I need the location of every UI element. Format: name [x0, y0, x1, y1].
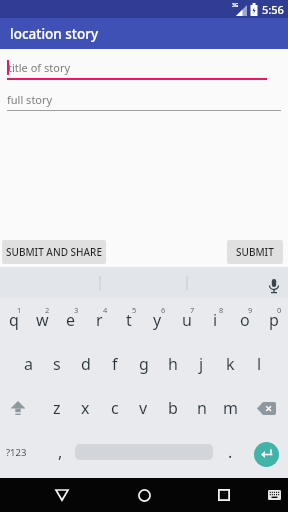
staticText: v — [139, 397, 148, 419]
button[interactable] — [245, 386, 288, 430]
staticText: s — [53, 353, 61, 375]
staticText: . — [228, 441, 233, 463]
staticText: 4 — [103, 305, 108, 315]
staticText: 2 — [45, 305, 50, 315]
staticText: 9 — [248, 305, 253, 315]
staticText: h — [168, 353, 178, 375]
staticText: 0 — [277, 305, 282, 315]
button[interactable]: SUBMIT — [227, 240, 283, 264]
button[interactable]: k — [216, 342, 245, 386]
button[interactable]: SUBMIT AND SHARE — [2, 240, 106, 264]
staticText: 1 — [17, 305, 22, 315]
button[interactable] — [245, 430, 288, 474]
staticText: d — [81, 353, 91, 375]
button[interactable]: title of story — [7, 60, 281, 75]
button[interactable] — [210, 481, 238, 509]
button[interactable]: 1 — [0, 298, 28, 342]
staticText: title of story — [8, 60, 71, 75]
staticText: g — [139, 353, 149, 375]
button[interactable]: 5 — [114, 298, 143, 342]
button[interactable]: j — [187, 342, 216, 386]
button[interactable]: . — [216, 430, 245, 474]
staticText: l — [257, 353, 262, 375]
staticText: n — [197, 397, 207, 419]
button[interactable]: 2 — [28, 298, 56, 342]
staticText: 3 — [74, 305, 79, 315]
staticText: f — [112, 353, 118, 375]
button[interactable] — [130, 481, 158, 509]
staticText: 8 — [219, 305, 224, 315]
button[interactable]: v — [129, 386, 158, 430]
staticText: , — [58, 441, 63, 463]
staticText: u — [182, 309, 192, 331]
button[interactable]: d — [71, 342, 100, 386]
button[interactable]: h — [158, 342, 187, 386]
button[interactable]: l — [245, 342, 274, 386]
staticText: a — [24, 353, 33, 375]
button[interactable]: 7 — [172, 298, 201, 342]
staticText: b — [168, 397, 178, 419]
staticText: i — [213, 309, 218, 331]
staticText: p — [269, 309, 279, 331]
button[interactable]: 6 — [143, 298, 172, 342]
staticText: j — [199, 353, 204, 375]
staticText: q — [9, 309, 19, 331]
staticText: k — [226, 353, 235, 375]
button[interactable]: z — [43, 386, 71, 430]
staticText: e — [66, 309, 76, 331]
staticText: w — [36, 309, 49, 331]
button[interactable]: 3 — [56, 298, 85, 342]
staticText: o — [240, 309, 250, 331]
button[interactable]: f — [100, 342, 129, 386]
button[interactable]: 0 — [259, 298, 288, 342]
button[interactable]: n — [187, 386, 216, 430]
staticText: SUBMIT — [236, 245, 274, 259]
button[interactable]: , — [43, 430, 72, 474]
staticText: ?123 — [6, 446, 27, 459]
button[interactable] — [265, 486, 283, 504]
staticText: m — [223, 397, 238, 419]
staticText: r — [96, 309, 103, 331]
staticText: z — [53, 397, 61, 419]
staticText: 3G — [232, 2, 239, 9]
button[interactable] — [72, 430, 216, 474]
staticText: 6 — [161, 305, 166, 315]
staticText: x — [81, 397, 90, 419]
button[interactable]: 8 — [201, 298, 230, 342]
button[interactable]: a — [14, 342, 42, 386]
staticText: 5:56 — [262, 2, 284, 17]
button[interactable]: x — [71, 386, 100, 430]
staticText: 7 — [190, 305, 195, 315]
button[interactable]: 9 — [230, 298, 259, 342]
staticText: 5 — [132, 305, 137, 315]
button[interactable] — [265, 277, 283, 295]
button[interactable]: full story — [7, 92, 281, 107]
staticText: location story — [10, 25, 99, 43]
button[interactable]: 4 — [85, 298, 114, 342]
button[interactable]: m — [216, 386, 245, 430]
button[interactable]: b — [158, 386, 187, 430]
staticText: full story — [7, 92, 53, 107]
staticText: SUBMIT AND SHARE — [6, 245, 102, 259]
staticText: y — [153, 309, 162, 331]
button[interactable]: g — [129, 342, 158, 386]
button[interactable] — [0, 386, 43, 430]
staticText: c — [111, 397, 119, 419]
button[interactable]: location story — [0, 18, 288, 49]
staticText: t — [126, 309, 132, 331]
button[interactable]: c — [100, 386, 129, 430]
button[interactable]: s — [42, 342, 71, 386]
button[interactable] — [48, 481, 76, 509]
button[interactable]: ?123 — [0, 430, 43, 474]
